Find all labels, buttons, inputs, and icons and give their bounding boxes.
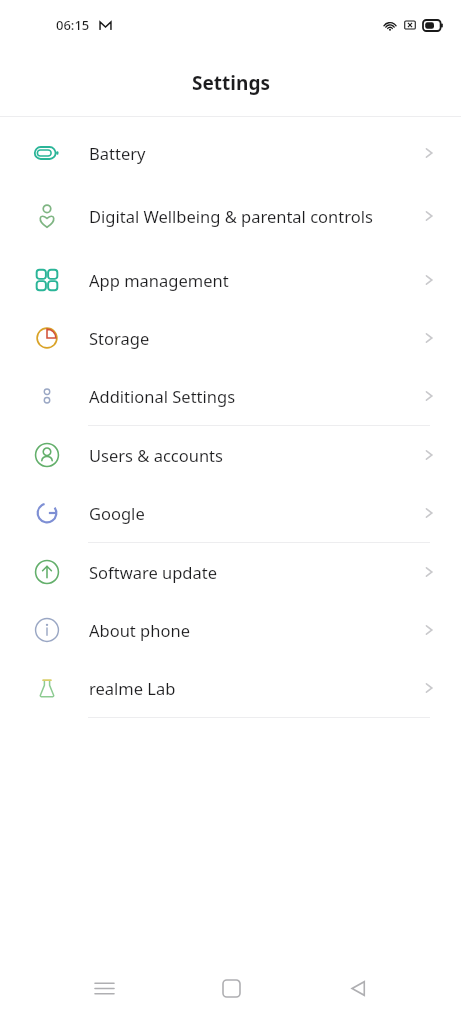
button[interactable]: Google (0, 484, 461, 542)
staticText: Settings (192, 70, 270, 96)
button[interactable]: Digital Wellbeing & parental controls (0, 181, 461, 251)
button[interactable]: Home (207, 964, 255, 1012)
button[interactable]: Battery (0, 125, 461, 181)
button[interactable]: App management (0, 251, 461, 309)
staticText: Storage (89, 327, 407, 349)
staticText: Battery (89, 142, 407, 164)
button[interactable]: Users & accounts (0, 426, 461, 484)
button[interactable]: Back (334, 964, 382, 1012)
staticText: 06:15 (56, 16, 90, 34)
staticText: Users & accounts (89, 444, 407, 466)
button[interactable]: Additional Settings (0, 367, 461, 425)
staticText: realme Lab (89, 677, 407, 699)
button[interactable]: Recents (80, 964, 128, 1012)
button[interactable]: realme Lab (0, 659, 461, 717)
button[interactable]: Storage (0, 309, 461, 367)
staticText: Digital Wellbeing & parental controls (89, 205, 407, 227)
staticText: Additional Settings (89, 385, 407, 407)
staticText: App management (89, 269, 407, 291)
button[interactable]: Software update (0, 543, 461, 601)
staticText: About phone (89, 619, 407, 641)
button[interactable]: About phone (0, 601, 461, 659)
staticText: Google (89, 502, 407, 524)
staticText: Software update (89, 561, 407, 583)
